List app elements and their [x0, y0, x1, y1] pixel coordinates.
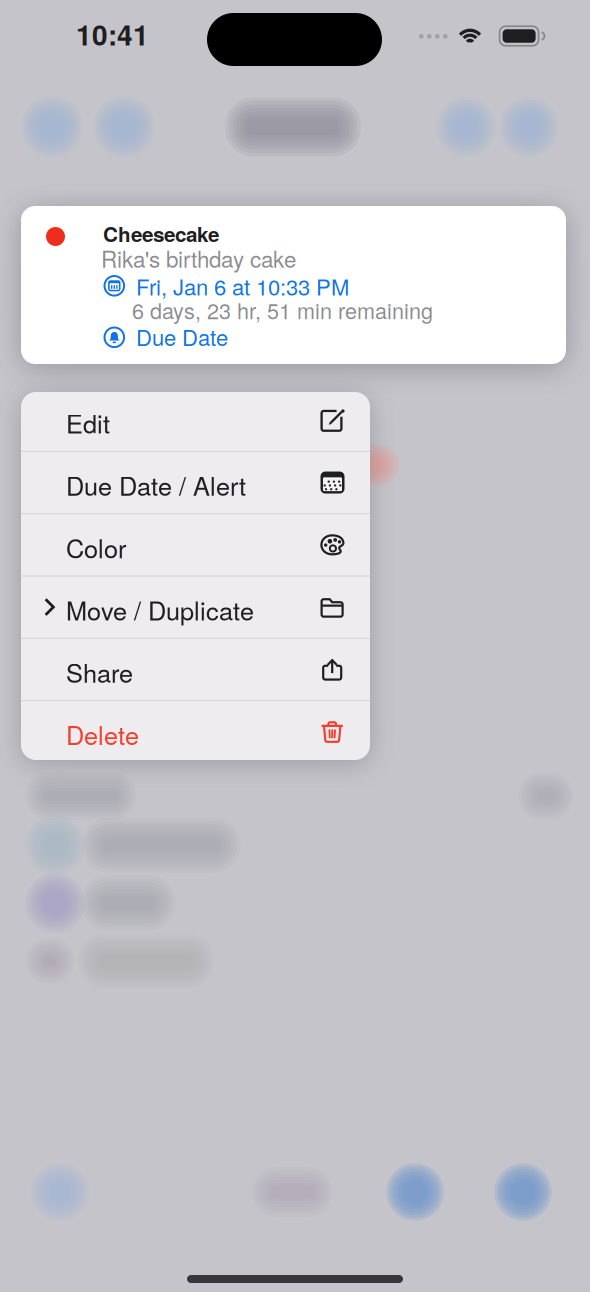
- button[interactable]: Delete: [21, 701, 370, 762]
- staticText: Share: [66, 654, 133, 690]
- staticText: 6 days, 23 hr, 51 min remaining: [132, 294, 433, 325]
- staticText: Rika's birthday cake: [101, 242, 296, 274]
- staticText: Color: [66, 529, 126, 565]
- button[interactable]: Due Date / Alert: [21, 452, 370, 513]
- staticText: Fri, Jan 6 at 10:33 PM: [136, 270, 349, 302]
- button[interactable]: Color: [21, 514, 370, 575]
- staticText: Edit: [66, 404, 110, 441]
- staticText: Cheesecake: [103, 219, 219, 248]
- button[interactable]: Share: [21, 639, 370, 700]
- staticText: Move / Duplicate: [66, 591, 254, 628]
- staticText: Delete: [66, 716, 139, 752]
- button[interactable]: Move / Duplicate: [21, 576, 370, 638]
- staticText: Due Date: [136, 321, 228, 352]
- staticText: 10:41: [76, 14, 149, 54]
- staticText: Due Date / Alert: [66, 467, 246, 503]
- button[interactable]: Edit: [21, 390, 370, 451]
